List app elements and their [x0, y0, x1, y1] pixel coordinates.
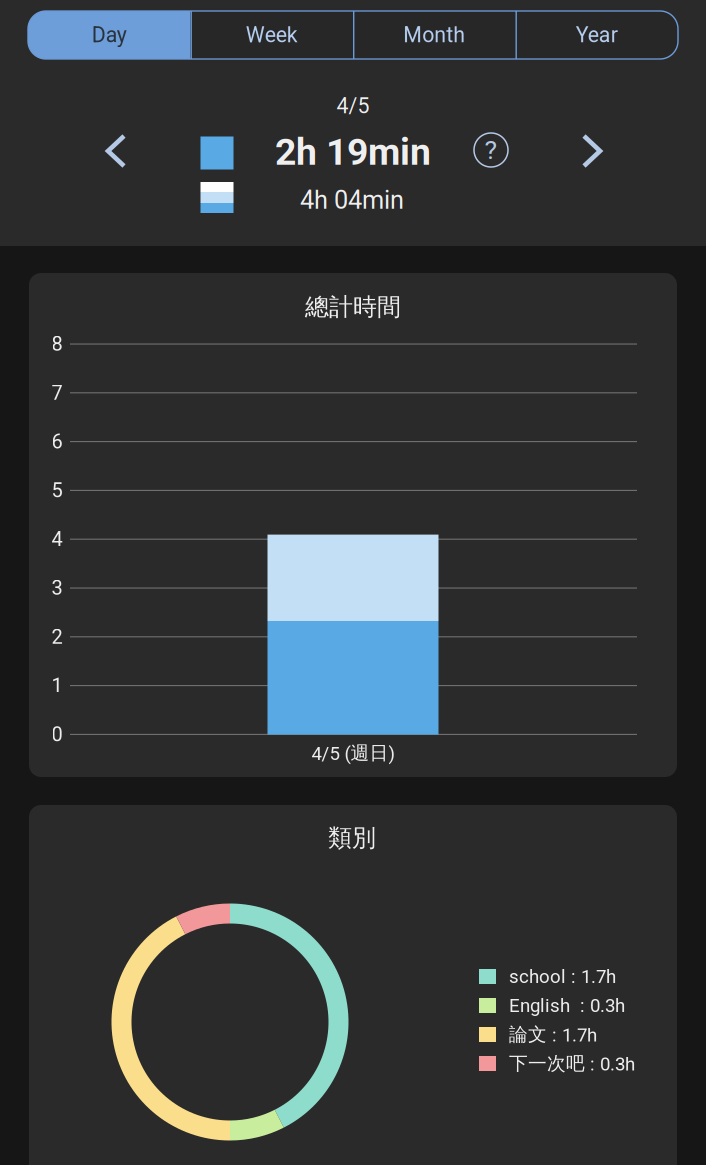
- staticText: 7: [51, 381, 62, 404]
- staticText: 2: [51, 625, 62, 648]
- button[interactable]: Next day: [581, 133, 602, 168]
- staticText: Month: [403, 22, 465, 47]
- staticText: Week: [246, 22, 298, 47]
- staticText: 4: [51, 527, 62, 551]
- button[interactable]: Help: [474, 133, 508, 167]
- staticText: Day: [92, 22, 127, 47]
- staticText: 4h 04min: [300, 185, 404, 215]
- staticText: 2h 19min: [275, 130, 431, 174]
- button[interactable]: Previous day: [105, 133, 126, 168]
- button[interactable]: Day: [28, 11, 190, 59]
- staticText: 4/5 (週日): [311, 741, 394, 765]
- staticText: 論文 : 1.7h: [509, 1023, 597, 1046]
- staticText: 類別: [328, 823, 376, 853]
- staticText: English : 0.3h: [509, 995, 625, 1016]
- staticText: 0: [51, 723, 62, 746]
- staticText: school : 1.7h: [509, 966, 616, 987]
- staticText: 1: [51, 674, 62, 697]
- staticText: 下一次吧 : 0.3h: [509, 1052, 635, 1075]
- staticText: 6: [51, 430, 62, 453]
- staticText: 5: [51, 479, 62, 502]
- staticText: 8: [51, 332, 62, 356]
- staticText: 4/5: [336, 93, 369, 118]
- button[interactable]: Year: [515, 11, 678, 59]
- staticText: Year: [576, 22, 618, 47]
- button[interactable]: Week: [190, 11, 353, 59]
- staticText: ?: [484, 134, 497, 166]
- button[interactable]: Month: [353, 11, 515, 59]
- staticText: 總計時間: [305, 292, 401, 322]
- staticText: 3: [51, 576, 62, 600]
